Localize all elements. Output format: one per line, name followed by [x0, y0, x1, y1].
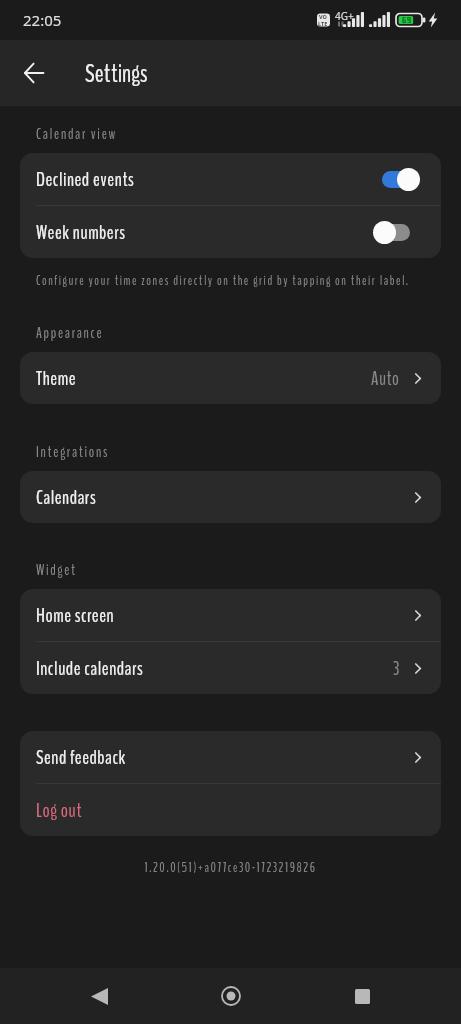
button[interactable]: Recent apps [329, 968, 395, 1024]
button[interactable]: Theme [20, 352, 441, 404]
button[interactable]: Include calendars [20, 642, 441, 694]
button[interactable]: On [373, 168, 420, 191]
staticText: Widget [36, 560, 77, 580]
staticText: Integrations [36, 442, 109, 462]
button[interactable]: Calendars [20, 471, 441, 523]
staticText: Appearance [36, 323, 104, 343]
staticText: Settings [85, 56, 148, 91]
staticText: 4G+ [335, 9, 354, 23]
button[interactable]: Log out [20, 784, 441, 836]
staticText: 22:05 [23, 10, 62, 30]
button[interactable]: Week numbers [20, 206, 441, 258]
staticText: LTE [318, 20, 328, 27]
staticText: Theme [36, 365, 77, 392]
button[interactable]: Back [66, 968, 132, 1024]
button[interactable]: Declined events [20, 153, 441, 205]
staticText: Auto [371, 366, 400, 391]
staticText: Calendar view [36, 124, 117, 144]
button[interactable]: Navigate back [0, 40, 67, 106]
button[interactable]: Off [373, 221, 420, 244]
staticText: Week numbers [36, 219, 126, 246]
staticText: Include calendars [36, 655, 144, 682]
button[interactable]: Home [198, 968, 264, 1024]
button[interactable]: Send feedback [20, 731, 441, 783]
staticText: Calendars [36, 484, 97, 511]
button[interactable]: Home screen [20, 589, 441, 641]
staticText: VO [319, 13, 327, 20]
staticText: 1.20.0(51)+a077ce30-1723219826 [0, 859, 461, 876]
staticText: Home screen [36, 602, 115, 629]
staticText: Declined events [36, 166, 135, 193]
staticText: Send feedback [36, 744, 126, 771]
staticText: Configure your time zones directly on th… [36, 272, 410, 289]
staticText: 3 [393, 656, 400, 681]
staticText: Log out [36, 797, 83, 824]
